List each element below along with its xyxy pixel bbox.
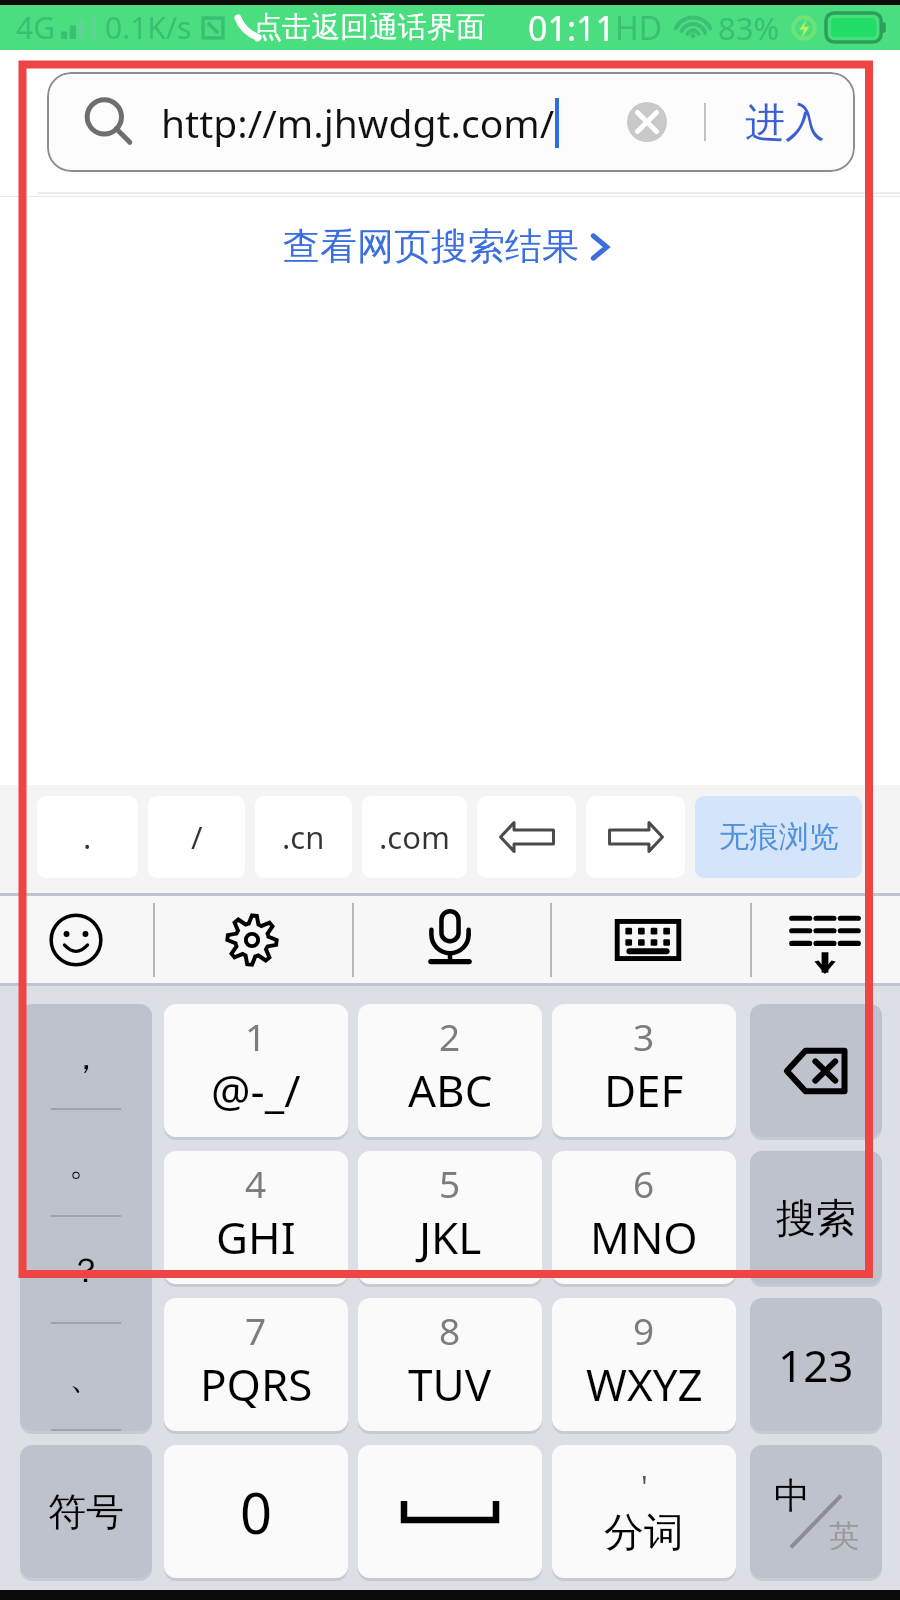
staticText: 查看网页搜索结果	[283, 223, 579, 270]
staticText: 进入	[745, 97, 825, 147]
button[interactable]: 中	[750, 1445, 882, 1578]
staticText: WXYZ	[586, 1354, 703, 1414]
staticText: 9	[633, 1305, 655, 1355]
button[interactable]: Space	[358, 1445, 542, 1578]
button[interactable]: 符号	[20, 1445, 152, 1578]
button[interactable]: 4	[164, 1151, 348, 1284]
button[interactable]: Back	[477, 796, 576, 878]
button[interactable]: Hide keyboard	[751, 893, 899, 986]
button[interactable]: .com	[362, 796, 467, 878]
staticText: 3	[633, 1011, 655, 1061]
staticText: MNO	[590, 1207, 698, 1267]
staticText: 4	[245, 1158, 267, 1208]
staticText: 7	[245, 1305, 267, 1355]
staticText: ？	[69, 1249, 103, 1292]
staticText: 83%	[718, 7, 780, 49]
staticText: 1	[245, 1011, 267, 1061]
button[interactable]: 进入	[731, 79, 839, 165]
button[interactable]: Clear	[616, 91, 678, 153]
staticText: .cn	[282, 816, 325, 858]
button[interactable]: '	[552, 1445, 736, 1578]
staticText: .com	[379, 816, 450, 858]
button[interactable]: .	[37, 796, 138, 878]
button[interactable]: .cn	[255, 796, 352, 878]
staticText: 4G	[16, 7, 55, 48]
button[interactable]: ，	[20, 1004, 152, 1431]
button[interactable]: 无痕浏览	[695, 796, 862, 878]
button[interactable]: 6	[552, 1151, 736, 1284]
staticText: ，	[69, 1036, 103, 1079]
button[interactable]: 2	[358, 1004, 542, 1137]
staticText: 8	[439, 1305, 461, 1355]
staticText: '	[641, 1466, 648, 1507]
button[interactable]: 123	[750, 1298, 882, 1431]
staticText: TUV	[408, 1354, 492, 1414]
button[interactable]: 7	[164, 1298, 348, 1431]
button[interactable]: 搜索	[750, 1151, 882, 1284]
button[interactable]: 3	[552, 1004, 736, 1137]
staticText: 分词	[604, 1507, 684, 1557]
button[interactable]: 1	[164, 1004, 348, 1137]
staticText: HD	[615, 6, 663, 50]
staticText: http://m.jhwdgt.com/	[161, 96, 555, 149]
button[interactable]: /	[148, 796, 245, 878]
button[interactable]: 8	[358, 1298, 542, 1431]
staticText: 0.1K/s	[105, 7, 192, 48]
button[interactable]: http://m.jhwdgt.com/	[47, 72, 855, 172]
button[interactable]: Forward	[586, 796, 685, 878]
staticText: @-_/	[211, 1060, 301, 1120]
staticText: 123	[778, 1335, 854, 1395]
staticText: /	[191, 816, 203, 858]
staticText: 。	[69, 1142, 103, 1185]
staticText: 、	[69, 1356, 103, 1399]
button[interactable]: Keyboard	[551, 893, 745, 986]
staticText: ABC	[408, 1060, 493, 1120]
staticText: 无痕浏览	[719, 818, 839, 856]
staticText: PQRS	[200, 1354, 313, 1414]
button[interactable]: Voice input	[353, 893, 547, 986]
staticText: JKL	[419, 1207, 482, 1267]
staticText: 点击返回通话界面	[253, 9, 485, 46]
staticText: 英	[829, 1517, 859, 1555]
button[interactable]: 0	[164, 1445, 348, 1578]
button[interactable]: Emoji	[9, 893, 142, 986]
staticText: GHI	[216, 1207, 296, 1267]
button[interactable]: 查看网页搜索结果	[277, 219, 623, 274]
button[interactable]: Backspace	[750, 1004, 882, 1137]
button[interactable]: 5	[358, 1151, 542, 1284]
staticText: 01:11	[528, 5, 615, 50]
staticText: 5	[439, 1158, 461, 1208]
staticText: DEF	[604, 1060, 684, 1120]
staticText: 中	[774, 1473, 810, 1518]
button[interactable]: 9	[552, 1298, 736, 1431]
staticText: 2	[439, 1011, 461, 1061]
staticText: .	[83, 816, 92, 858]
staticText: 符号	[48, 1488, 124, 1536]
staticText: 搜索	[776, 1193, 856, 1243]
staticText: 0	[240, 1474, 273, 1550]
button[interactable]: Settings	[154, 893, 350, 986]
staticText: 6	[633, 1158, 655, 1208]
